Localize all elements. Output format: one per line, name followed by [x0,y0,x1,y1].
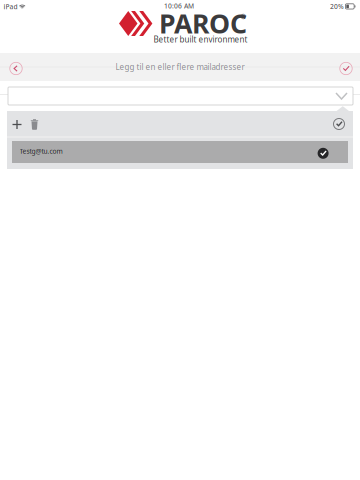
button[interactable]: Add [6,112,28,136]
button[interactable]: Testg@tu.com [12,141,348,163]
staticText: 20% [330,2,344,11]
staticText: Testg@tu.com [19,147,62,156]
staticText: iPad [3,2,17,11]
staticText: ® [240,12,246,21]
button[interactable]: Back [2,54,30,82]
staticText: Legg til en eller flere mailadresser [115,62,244,72]
staticText: Better built environment [153,34,247,45]
staticText: 10:06 AM [164,2,194,10]
button[interactable]: Confirm [327,112,351,136]
button[interactable]: Done [332,54,360,82]
button[interactable]: Delete [23,112,45,136]
staticText: PAROC [159,5,247,41]
